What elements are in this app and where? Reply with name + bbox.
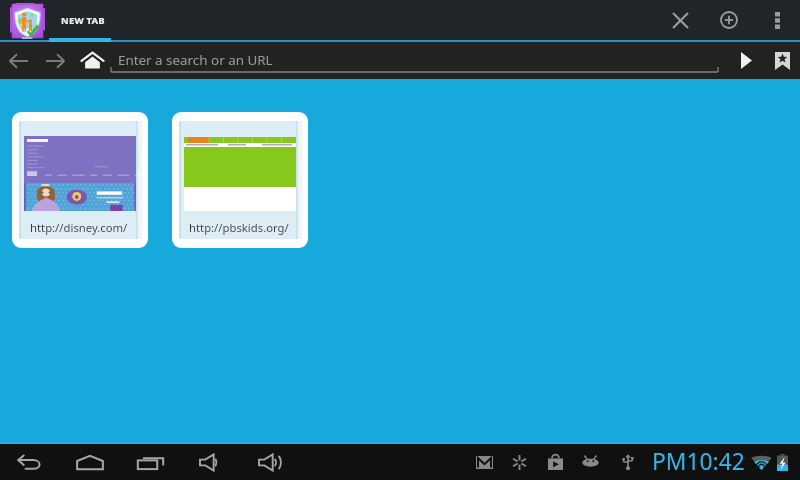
button[interactable]: Go xyxy=(728,42,764,79)
button[interactable]: Recent apps xyxy=(120,444,180,480)
button[interactable]: Enter a search or an URL xyxy=(110,42,728,79)
button[interactable]: Bookmarks xyxy=(764,42,800,79)
button[interactable]: http://disney.com/ xyxy=(12,112,148,248)
staticText: NEW TAB xyxy=(61,14,105,27)
button[interactable]: Home xyxy=(60,444,120,480)
staticText: Enter a search or an URL xyxy=(118,51,273,69)
staticText: http://pbskids.org/ xyxy=(189,220,289,235)
button[interactable]: Volume down xyxy=(180,444,240,480)
button[interactable]: More options xyxy=(754,0,800,40)
button[interactable]: Back xyxy=(0,42,37,79)
button[interactable]: Back xyxy=(0,444,60,480)
button[interactable]: Volume up xyxy=(240,444,300,480)
button[interactable]: Close tab xyxy=(656,0,704,40)
button[interactable]: Forward xyxy=(37,42,74,79)
staticText: http://disney.com/ xyxy=(30,220,128,235)
button[interactable]: Home xyxy=(74,42,110,79)
staticText: PM10:42 xyxy=(652,446,745,477)
button[interactable]: NEW TAB xyxy=(0,0,118,40)
button[interactable]: New tab xyxy=(704,0,754,40)
button[interactable]: http://pbskids.org/ xyxy=(172,112,308,248)
